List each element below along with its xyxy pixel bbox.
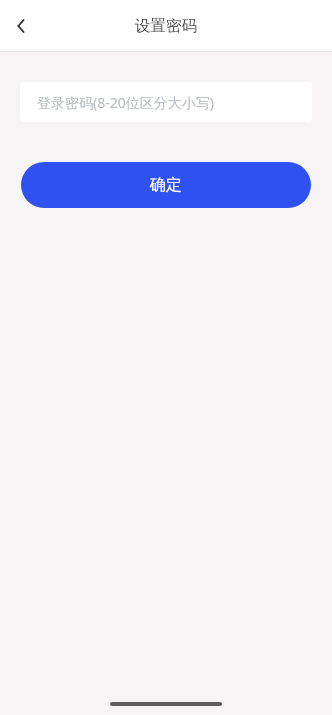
button[interactable]: 登录密码(8-20位区分大小写) [20,82,312,122]
button[interactable]: Back [0,4,44,48]
staticText: 登录密码(8-20位区分大小写) [37,93,214,112]
staticText: 设置密码 [135,16,197,36]
button[interactable]: 确定 [21,162,311,208]
staticText: 确定 [150,175,182,195]
